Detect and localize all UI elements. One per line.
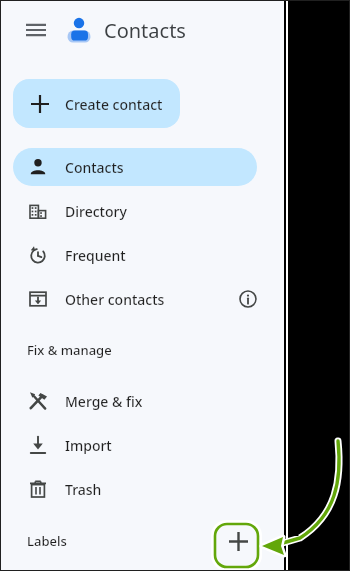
button[interactable]: Import	[13, 426, 257, 464]
staticText: Directory	[65, 202, 127, 221]
button[interactable]: Contacts	[13, 148, 257, 186]
staticText: Trash	[65, 480, 102, 499]
button[interactable]: Create label	[218, 521, 258, 561]
staticText: Contacts	[104, 17, 186, 44]
button[interactable]: Other contacts	[13, 280, 257, 318]
button[interactable]: Open navigation menu	[18, 12, 54, 48]
staticText: Other contacts	[65, 290, 165, 309]
staticText: Import	[65, 436, 112, 455]
button[interactable]: Frequent	[13, 236, 257, 274]
staticText: Create contact	[65, 95, 163, 114]
button[interactable]: Create contact	[13, 79, 180, 128]
button[interactable]: Directory	[13, 192, 257, 230]
staticText: Contacts	[65, 158, 124, 177]
button[interactable]: Merge & fix	[13, 382, 257, 420]
staticText: Labels	[27, 532, 67, 550]
staticText: Fix & manage	[27, 341, 112, 359]
staticText: Merge & fix	[65, 392, 143, 411]
staticText: Frequent	[65, 246, 126, 265]
button[interactable]: Trash	[13, 470, 257, 508]
